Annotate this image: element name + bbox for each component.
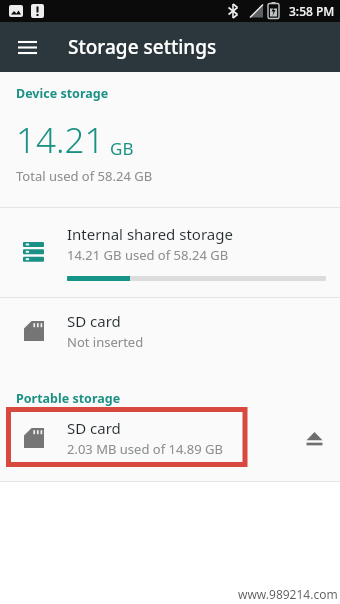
staticText: 14.21 xyxy=(16,116,105,164)
staticText: SD card xyxy=(67,311,121,331)
button[interactable]: Eject SD card xyxy=(288,407,340,469)
staticText: SD card xyxy=(67,418,121,438)
staticText: www.989214.com xyxy=(238,586,338,602)
staticText: Internal shared storage xyxy=(67,224,233,244)
button[interactable]: SD card xyxy=(0,298,340,364)
staticText: 14.21 GB used of 58.24 GB xyxy=(67,246,229,264)
button[interactable]: Open navigation menu xyxy=(8,28,46,66)
staticText: GB xyxy=(110,137,134,160)
staticText: Storage settings xyxy=(68,34,217,60)
staticText: Total used of 58.24 GB xyxy=(16,167,153,185)
button[interactable]: Internal shared storage xyxy=(0,208,340,297)
staticText: 2.03 MB used of 14.89 GB xyxy=(67,440,224,458)
staticText: Not inserted xyxy=(67,333,144,351)
staticText: Device storage xyxy=(16,85,109,102)
staticText: Portable storage xyxy=(16,390,121,407)
staticText: 3:58 PM xyxy=(289,3,335,19)
button[interactable]: SD card xyxy=(0,407,340,469)
